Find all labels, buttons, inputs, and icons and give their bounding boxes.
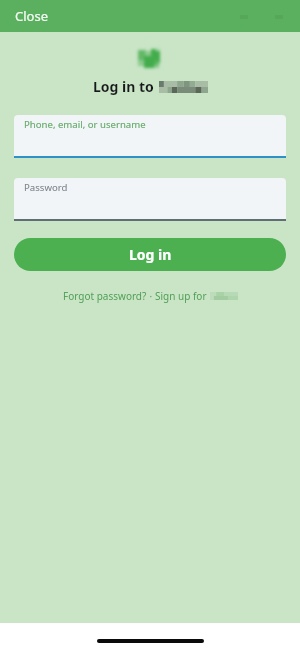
staticText: Forgot password? xyxy=(63,289,147,303)
staticText: · xyxy=(147,289,155,303)
button[interactable]: Phone, email, or username xyxy=(14,115,286,158)
button[interactable]: Close xyxy=(0,1,62,31)
staticText: Phone, email, or username xyxy=(24,118,146,131)
staticText: Close xyxy=(15,7,48,25)
button[interactable]: Log in xyxy=(14,238,286,271)
other: Logo xyxy=(137,45,163,71)
button[interactable]: Forgot password? xyxy=(63,289,147,303)
button[interactable]: Sign up for xyxy=(155,289,238,303)
staticText: Password xyxy=(24,181,68,194)
staticText: Log in xyxy=(129,245,172,264)
staticText: Sign up for xyxy=(155,289,210,303)
staticText: Log in to xyxy=(93,77,154,96)
button[interactable]: Password xyxy=(14,178,286,221)
